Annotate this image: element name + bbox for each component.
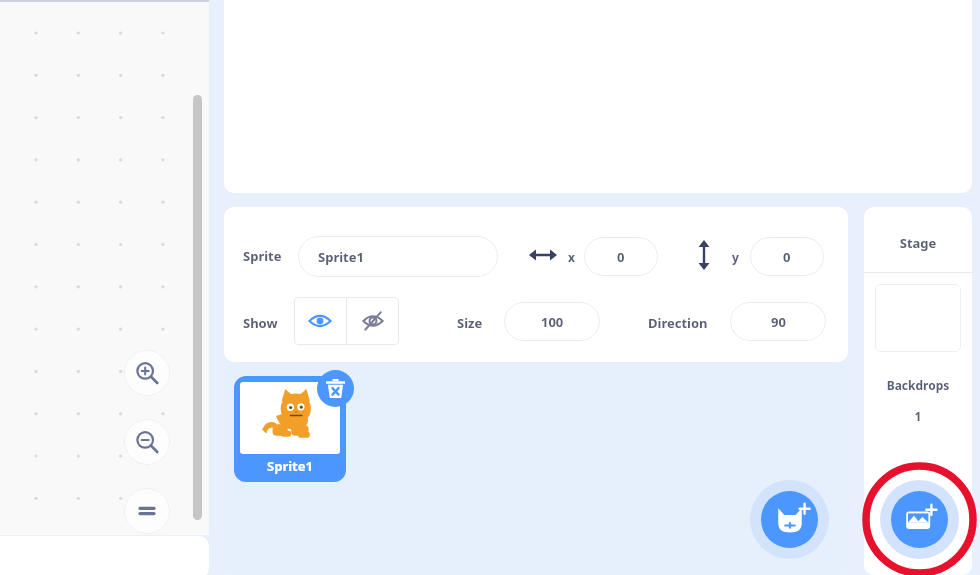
- staticText: Size: [457, 314, 483, 332]
- button[interactable]: 0: [584, 237, 658, 276]
- button[interactable]: Reset zoom: [124, 488, 170, 534]
- staticText: 0: [783, 248, 791, 266]
- button[interactable]: 100: [504, 302, 600, 341]
- button[interactable]: Delete sprite: [317, 370, 354, 407]
- staticText: 0: [617, 248, 625, 266]
- staticText: 90: [771, 313, 786, 331]
- staticText: Sprite1: [318, 248, 364, 266]
- staticText: 100: [541, 313, 564, 331]
- button[interactable]: 0: [750, 237, 824, 276]
- staticText: Sprite1: [234, 457, 346, 475]
- button[interactable]: Sprite1: [298, 236, 498, 277]
- button[interactable]: Choose a Backdrop: [891, 491, 948, 548]
- staticText: 1: [864, 408, 972, 424]
- staticText: Backdrops: [864, 377, 972, 393]
- staticText: Stage: [864, 234, 972, 252]
- button[interactable]: Zoom out: [124, 419, 170, 465]
- button[interactable]: Show sprite: [294, 297, 346, 345]
- staticText: y: [732, 249, 739, 265]
- button[interactable]: 90: [730, 302, 826, 341]
- button[interactable]: Choose a Sprite: [761, 491, 818, 548]
- staticText: x: [568, 249, 575, 265]
- button[interactable]: Sprite1: [234, 376, 346, 482]
- staticText: Direction: [648, 314, 708, 332]
- staticText: Sprite: [243, 247, 282, 265]
- button[interactable]: Hide sprite: [347, 297, 399, 345]
- button[interactable]: Stage: [864, 207, 972, 575]
- button[interactable]: Zoom in: [124, 350, 170, 396]
- staticText: Show: [243, 314, 278, 332]
